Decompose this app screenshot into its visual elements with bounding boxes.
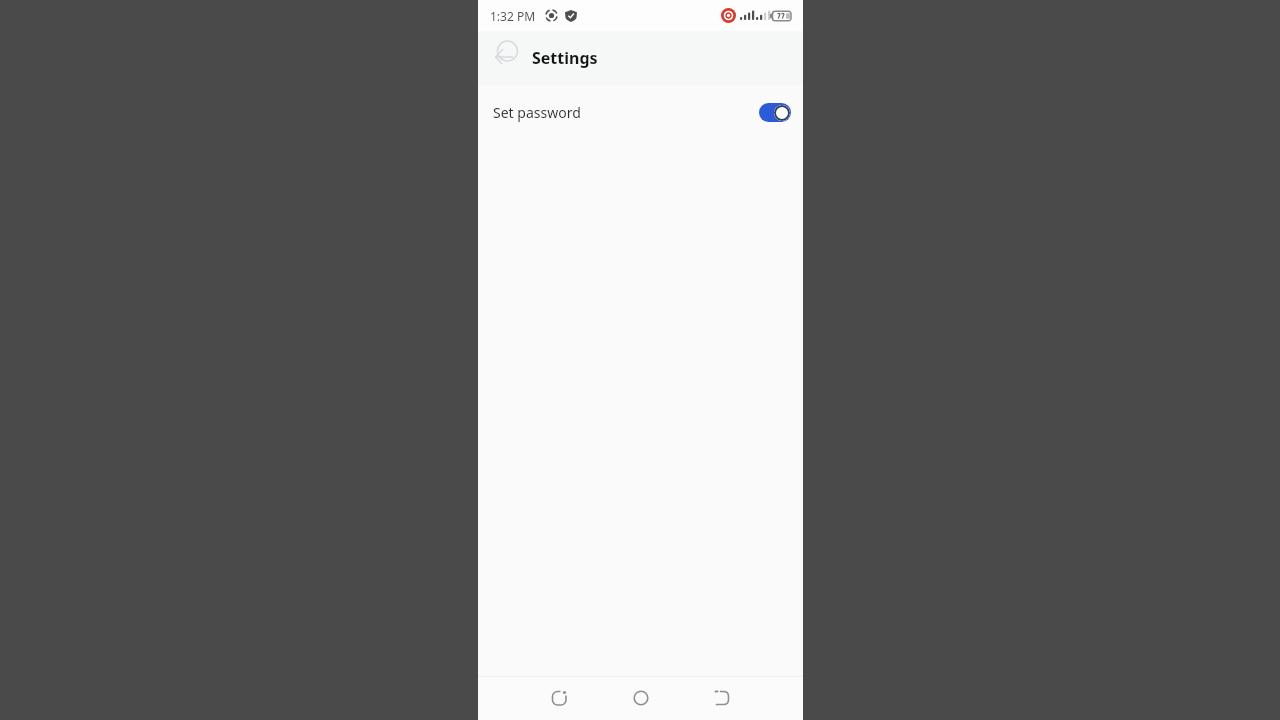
staticText: Settings xyxy=(532,47,598,69)
staticText: 1:32 PM xyxy=(490,8,536,24)
staticText: Set password xyxy=(493,103,581,122)
button[interactable] xyxy=(621,676,661,720)
button[interactable] xyxy=(540,676,580,720)
button[interactable] xyxy=(478,36,522,80)
button[interactable] xyxy=(759,103,791,122)
button[interactable] xyxy=(702,676,742,720)
button[interactable]: Set password xyxy=(478,85,803,140)
